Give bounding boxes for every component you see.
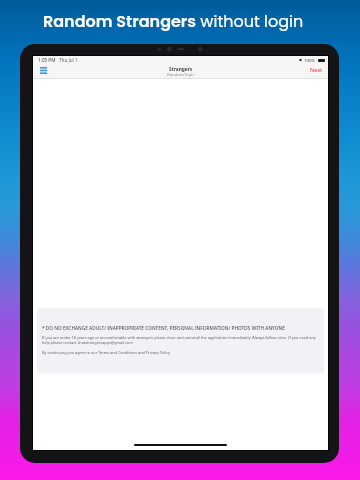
staticText: By continuing you agree to our Terms and… xyxy=(42,350,170,355)
staticText: RandomTopic xyxy=(167,71,195,77)
staticText: Next xyxy=(310,66,323,73)
staticText: If you are under 18 years age or uncomfo… xyxy=(42,335,319,345)
staticText: 1:05 PM xyxy=(38,57,56,63)
staticText: 100% xyxy=(304,57,316,63)
button[interactable]: Next xyxy=(310,66,323,73)
staticText: Random Strangers without login xyxy=(43,10,304,32)
staticText: * DO NO EXCHANGE ADULT/ INAPPROPRIATE CO… xyxy=(42,325,285,331)
staticText: Thu Jul 1 xyxy=(59,57,78,63)
staticText: Strangers xyxy=(169,66,193,73)
button[interactable]: Open menu xyxy=(37,64,49,76)
